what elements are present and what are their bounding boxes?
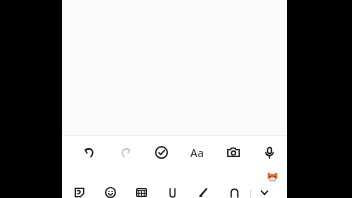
button[interactable]: Keyboard theme	[266, 171, 279, 184]
button[interactable]: GIF keyboard	[126, 186, 157, 198]
button[interactable]: Checklist	[143, 136, 179, 168]
button[interactable]: Camera	[215, 136, 251, 168]
button[interactable]: Voice recording	[251, 136, 287, 168]
staticText: Aa	[190, 145, 204, 160]
button[interactable]: Translate	[219, 186, 250, 198]
button[interactable]: Aa	[179, 136, 215, 168]
button[interactable]: Undo	[71, 136, 107, 168]
button[interactable]: Collapse keyboard	[251, 186, 277, 198]
button[interactable]: Emoji	[95, 186, 126, 198]
button[interactable]: Clipboard	[157, 186, 188, 198]
button[interactable]: Redo	[107, 136, 143, 168]
button[interactable]: Stickers	[64, 186, 95, 198]
button[interactable]: Handwriting	[188, 186, 219, 198]
